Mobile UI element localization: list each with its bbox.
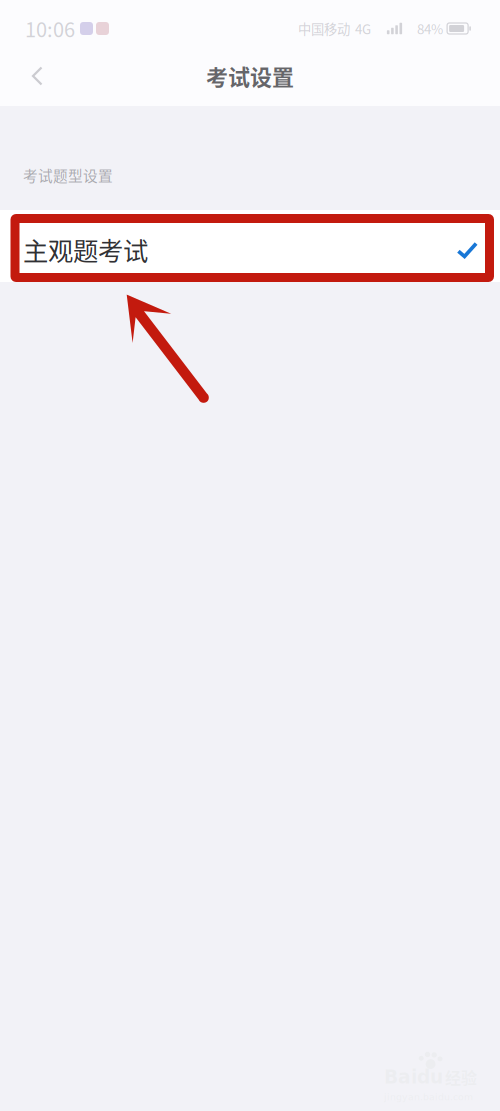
staticText: 84% [417,19,443,38]
staticText: 10:06 [25,14,75,43]
staticText: 4G [355,19,371,38]
staticText: 中国移动 [298,19,350,38]
button[interactable]: 返回 [0,55,68,104]
staticText: 主观题考试 [23,231,148,268]
staticText: 考试设置 [206,60,294,92]
staticText: 考试题型设置 [23,164,113,186]
button[interactable]: 主观题考试 [0,210,500,282]
